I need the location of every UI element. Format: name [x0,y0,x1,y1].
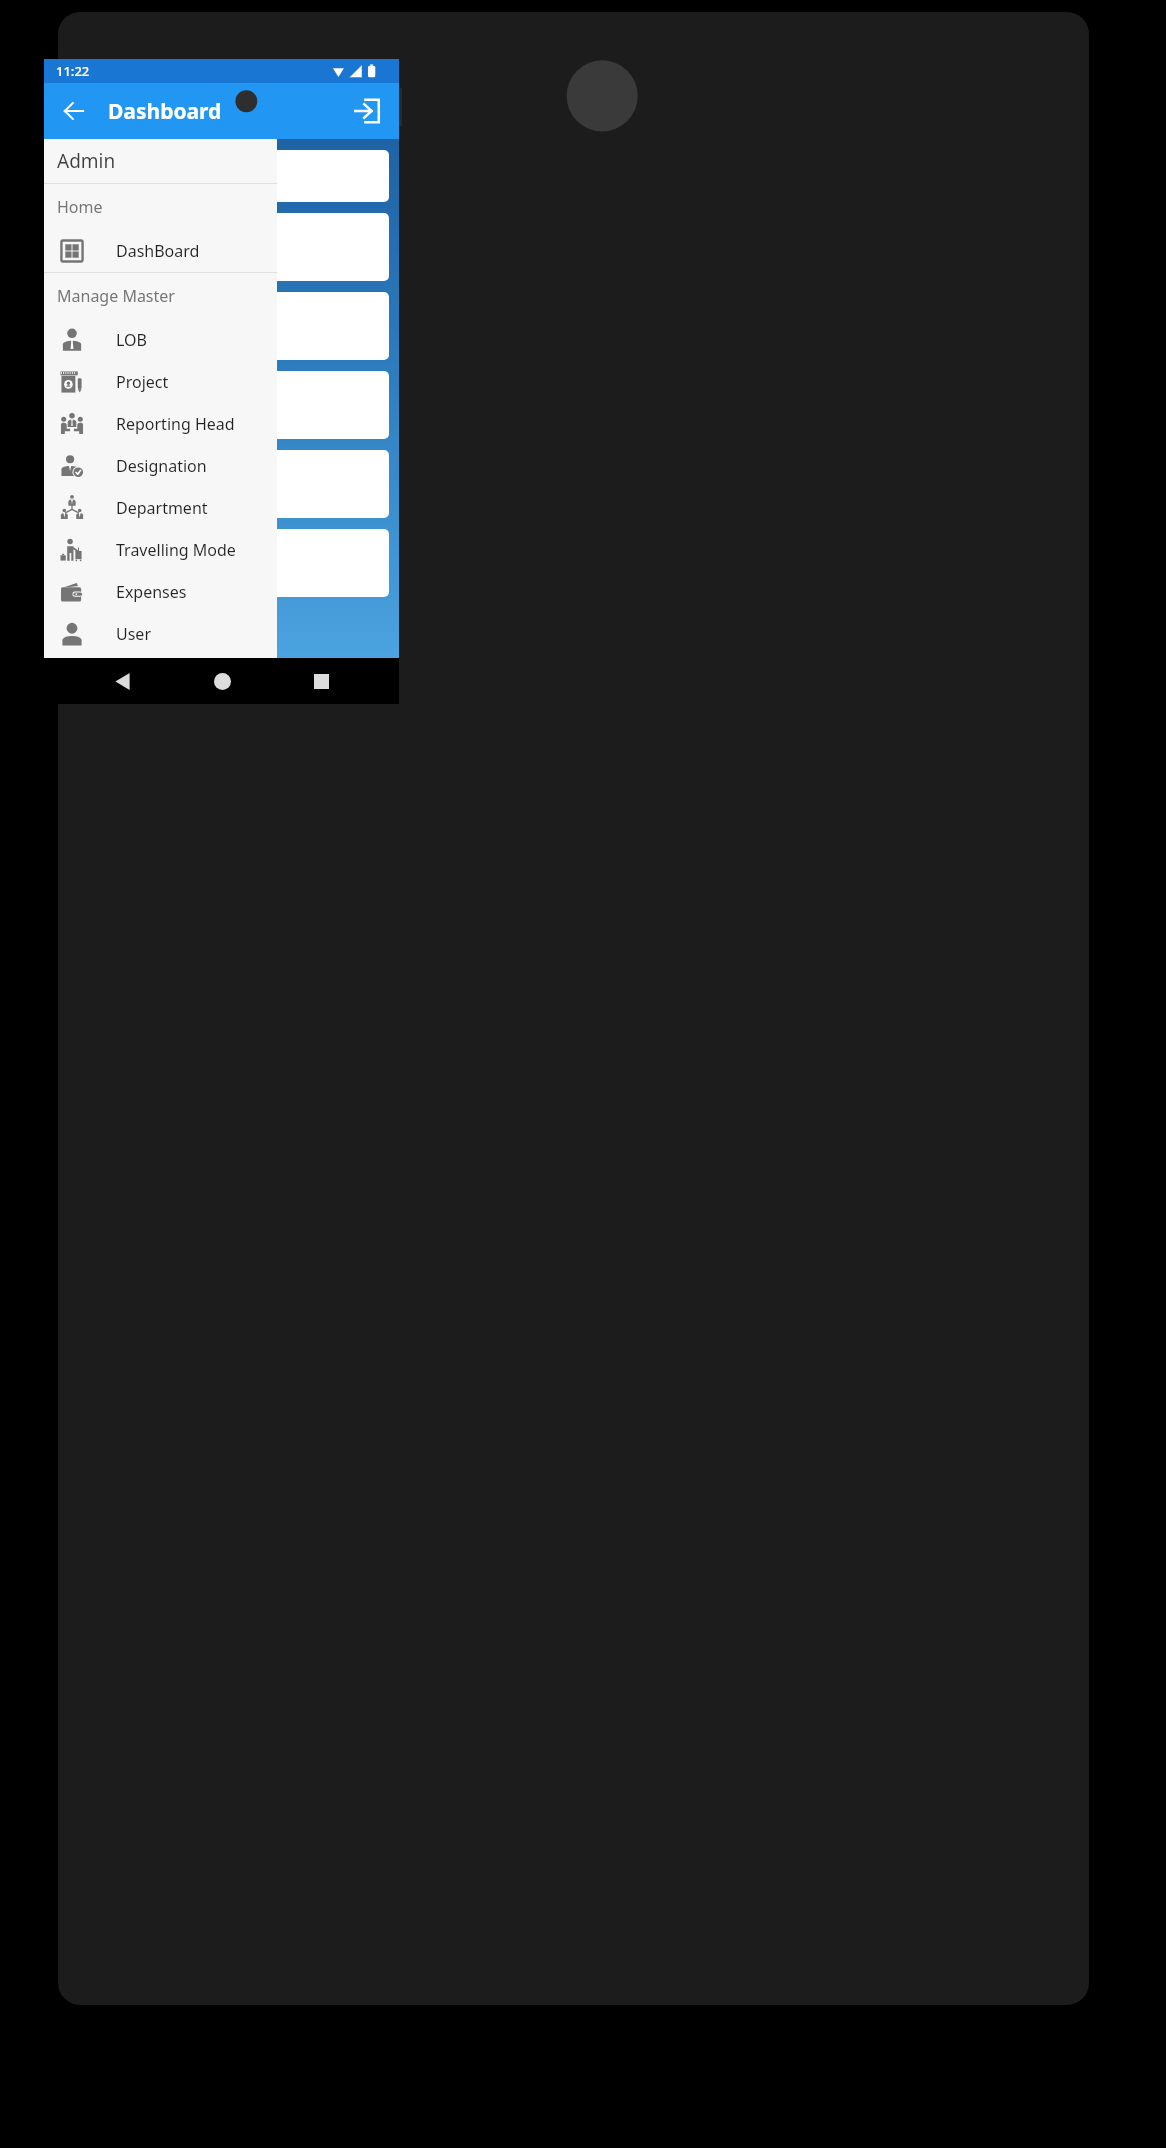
button[interactable]: Expenses [44,571,277,613]
button[interactable]: Designation [44,445,277,487]
staticText: Dashboard [108,97,222,126]
staticText: DashBoard [116,240,200,262]
button[interactable] [54,371,389,439]
button[interactable]: TOTAL BUSINESS [54,213,389,281]
button[interactable] [54,150,389,202]
staticText: Designation [116,455,207,477]
staticText: User [116,623,151,645]
staticText: LOB [116,329,147,351]
staticText: 11:22 [56,62,90,80]
staticText: Admin [57,148,116,174]
button[interactable]: Department [44,487,277,529]
staticText: Expenses [116,581,187,603]
button[interactable]: DashBoard [44,230,277,272]
button[interactable] [54,450,389,518]
button[interactable]: Travelling Mode [44,529,277,571]
staticText: Home [57,196,103,218]
button[interactable]: LOB [44,319,277,361]
staticText: Department [116,497,208,519]
button[interactable]: Project [44,361,277,403]
staticText: Travelling Mode [116,539,236,561]
button[interactable]: Recent apps [299,659,343,703]
button[interactable] [54,529,389,597]
button[interactable]: User [44,613,277,655]
staticText: Reporting Head [116,413,235,435]
button[interactable]: Back [50,87,98,135]
button[interactable]: Logout [343,87,391,135]
button[interactable] [54,292,389,360]
staticText: Project [116,371,169,393]
staticText: Manage Master [57,285,175,307]
staticText: TOTAL BUSINESS [68,236,195,258]
button[interactable]: Back [100,659,144,703]
button[interactable]: Reporting Head [44,403,277,445]
button[interactable]: Home [200,659,244,703]
